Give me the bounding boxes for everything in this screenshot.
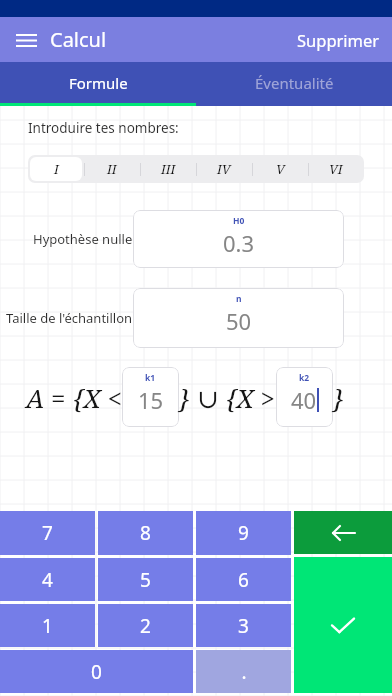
button[interactable]: Valider bbox=[294, 557, 392, 693]
button[interactable]: Supprimer bbox=[285, 21, 392, 59]
button[interactable]: III bbox=[140, 155, 196, 183]
staticText: 3 bbox=[238, 613, 249, 639]
staticText: Éventualité bbox=[255, 73, 334, 93]
staticText: III bbox=[161, 160, 176, 178]
staticText: 40 bbox=[291, 385, 317, 415]
staticText: n bbox=[236, 293, 242, 305]
staticText: . bbox=[241, 659, 247, 685]
staticText: k2 bbox=[299, 372, 310, 384]
staticText: } bbox=[333, 380, 345, 415]
button[interactable]: 0 bbox=[0, 650, 193, 693]
staticText: 1 bbox=[42, 613, 53, 639]
staticText: 15 bbox=[138, 385, 164, 415]
button[interactable]: 7 bbox=[0, 511, 95, 555]
button[interactable]: 8 bbox=[98, 511, 193, 555]
staticText: IV bbox=[217, 160, 231, 178]
staticText: 0 bbox=[91, 659, 102, 685]
staticText: Hypothèse nulle bbox=[33, 230, 133, 248]
staticText: 50 bbox=[226, 306, 252, 336]
staticText: 6 bbox=[238, 567, 249, 593]
button[interactable]: 5 bbox=[98, 558, 193, 601]
button[interactable]: Backspace bbox=[294, 511, 392, 554]
staticText: } ∪ {X > bbox=[179, 380, 276, 415]
staticText: A = {X < bbox=[26, 380, 122, 415]
staticText: Introduire tes nombres: bbox=[28, 119, 179, 137]
staticText: k1 bbox=[145, 372, 156, 384]
button[interactable]: V bbox=[252, 155, 308, 183]
staticText: Formule bbox=[69, 73, 128, 93]
staticText: H0 bbox=[233, 215, 245, 227]
button[interactable]: . bbox=[196, 650, 291, 693]
staticText: 7 bbox=[42, 520, 53, 546]
button[interactable]: k1 bbox=[122, 367, 179, 427]
button[interactable]: IV bbox=[196, 155, 252, 183]
button[interactable]: 2 bbox=[98, 604, 193, 647]
staticText: 8 bbox=[140, 520, 151, 546]
staticText: 5 bbox=[140, 567, 151, 593]
button[interactable]: Formule bbox=[0, 62, 196, 103]
button[interactable]: H0 bbox=[133, 210, 344, 268]
button[interactable]: 4 bbox=[0, 558, 95, 601]
button[interactable]: 1 bbox=[0, 604, 95, 647]
staticText: I bbox=[54, 160, 59, 178]
staticText: VI bbox=[329, 160, 343, 178]
button[interactable]: n bbox=[133, 288, 344, 348]
button[interactable]: 6 bbox=[196, 558, 291, 601]
staticText: Taille de l'échantillon bbox=[6, 309, 133, 327]
button[interactable]: 9 bbox=[196, 511, 291, 555]
staticText: Calcul bbox=[50, 26, 107, 53]
button[interactable]: k2 bbox=[276, 367, 333, 427]
button[interactable]: II bbox=[84, 155, 140, 183]
button[interactable]: Menu bbox=[8, 22, 44, 58]
button[interactable]: 3 bbox=[196, 604, 291, 647]
button[interactable]: VI bbox=[308, 155, 364, 183]
staticText: 2 bbox=[140, 613, 151, 639]
staticText: V bbox=[276, 160, 285, 178]
staticText: Supprimer bbox=[297, 29, 380, 51]
button[interactable]: I bbox=[28, 155, 84, 183]
staticText: II bbox=[107, 160, 117, 178]
staticText: 0.3 bbox=[223, 228, 255, 258]
staticText: 4 bbox=[42, 567, 53, 593]
button[interactable]: Éventualité bbox=[196, 62, 392, 103]
staticText: 9 bbox=[238, 520, 249, 546]
